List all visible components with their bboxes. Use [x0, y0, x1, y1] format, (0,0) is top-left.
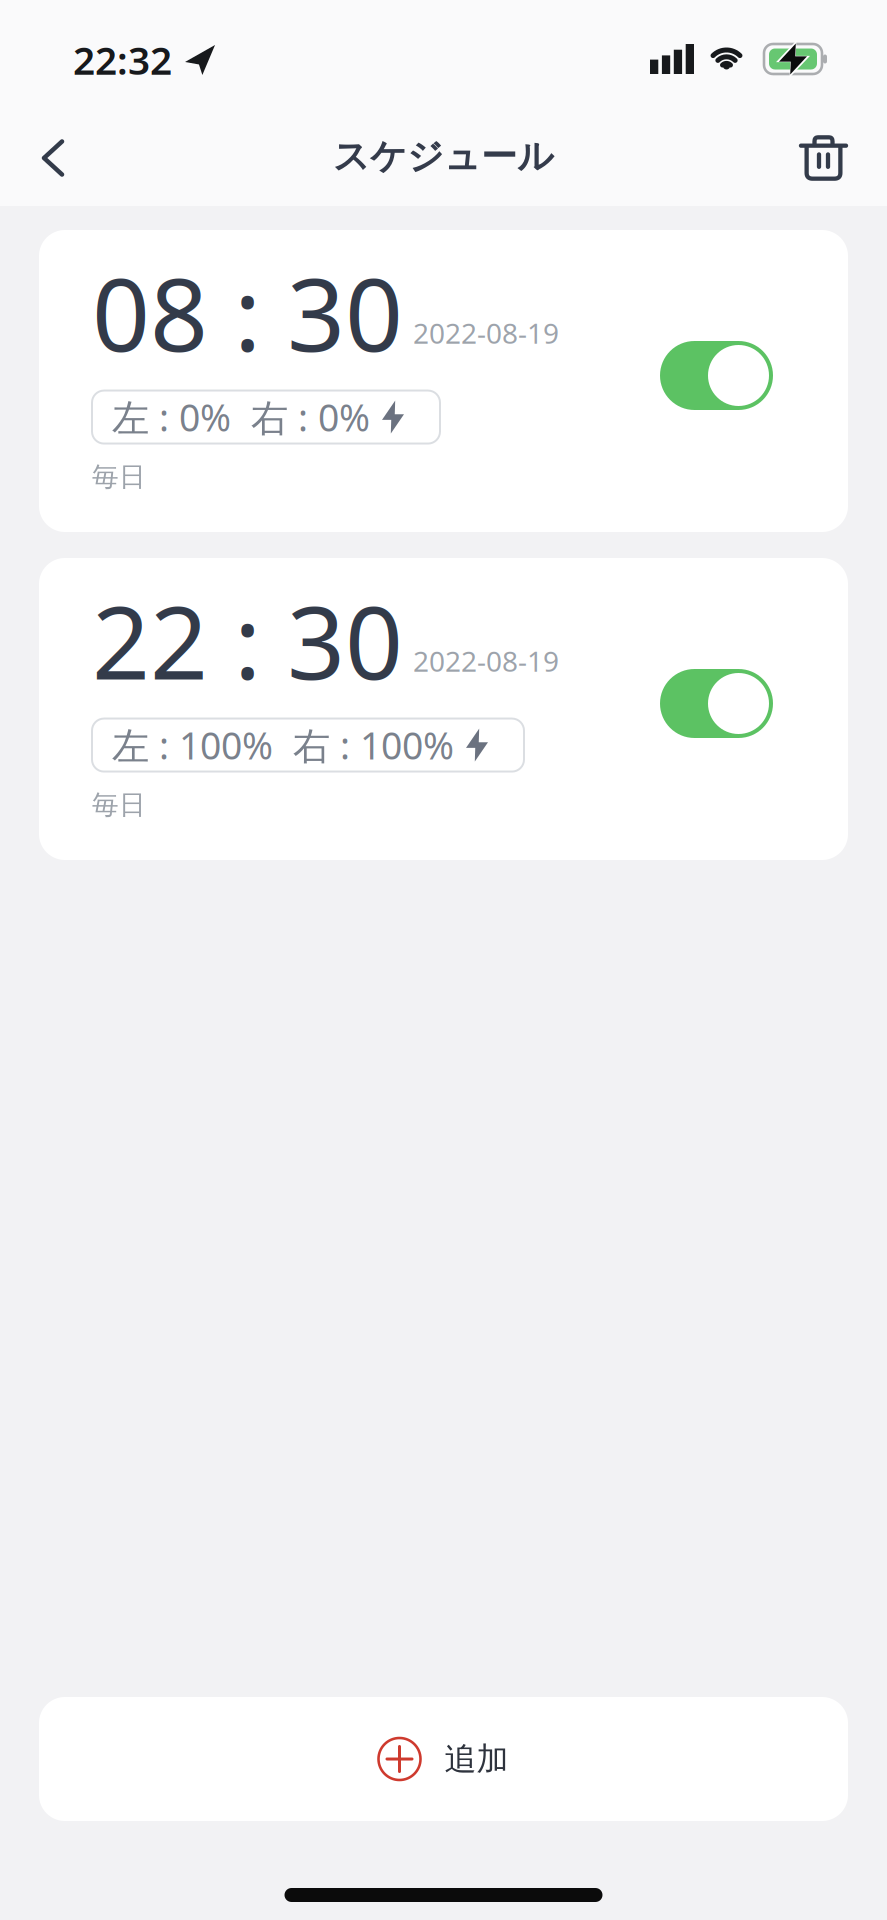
- staticText: 2022-08-19: [413, 642, 559, 680]
- staticText: スケジュール: [333, 134, 554, 179]
- button[interactable]: Delete: [776, 115, 887, 201]
- staticText: 追加: [444, 1739, 508, 1779]
- button[interactable]: Enabled: [660, 669, 773, 738]
- staticText: 22:32: [73, 34, 172, 85]
- button[interactable]: 08 : 30: [39, 230, 848, 532]
- button[interactable]: Enabled: [660, 341, 773, 410]
- staticText: 08 : 30: [92, 245, 403, 380]
- staticText: 22 : 30: [92, 573, 403, 708]
- staticText: 毎日: [92, 461, 146, 493]
- button[interactable]: 追加: [39, 1697, 848, 1821]
- staticText: 毎日: [92, 789, 146, 821]
- staticText: 左 : 100% 右 : 100%: [112, 720, 454, 770]
- button[interactable]: Back: [0, 115, 92, 200]
- staticText: 左 : 0% 右 : 0%: [112, 392, 370, 442]
- button[interactable]: 22 : 30: [39, 558, 848, 860]
- staticText: 2022-08-19: [413, 314, 559, 352]
